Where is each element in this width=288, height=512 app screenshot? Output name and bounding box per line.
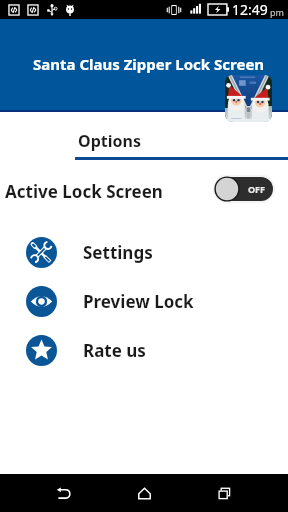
button[interactable]: Rate us — [0, 334, 288, 366]
staticText: Active Lock Screen — [5, 180, 163, 203]
staticText: Santa Claus Zipper Lock Screen — [33, 54, 265, 74]
staticText: Settings — [83, 241, 153, 264]
button[interactable]: Active Lock Screen — [0, 172, 288, 206]
staticText: Rate us — [83, 339, 146, 362]
button[interactable]: Options — [60, 124, 159, 157]
staticText: Options — [78, 130, 141, 152]
button[interactable]: Back — [24, 474, 104, 512]
staticText: pm — [270, 6, 284, 18]
button[interactable]: Active Lock Screen toggle, off — [215, 177, 273, 201]
staticText: OFF — [248, 183, 266, 195]
button[interactable]: Home — [104, 474, 184, 512]
button[interactable]: Recent apps — [184, 474, 264, 512]
staticText: Preview Lock — [83, 290, 194, 313]
button[interactable]: Preview Lock — [0, 285, 288, 317]
button[interactable]: Settings — [0, 236, 288, 268]
staticText: 12:49 — [232, 0, 268, 19]
